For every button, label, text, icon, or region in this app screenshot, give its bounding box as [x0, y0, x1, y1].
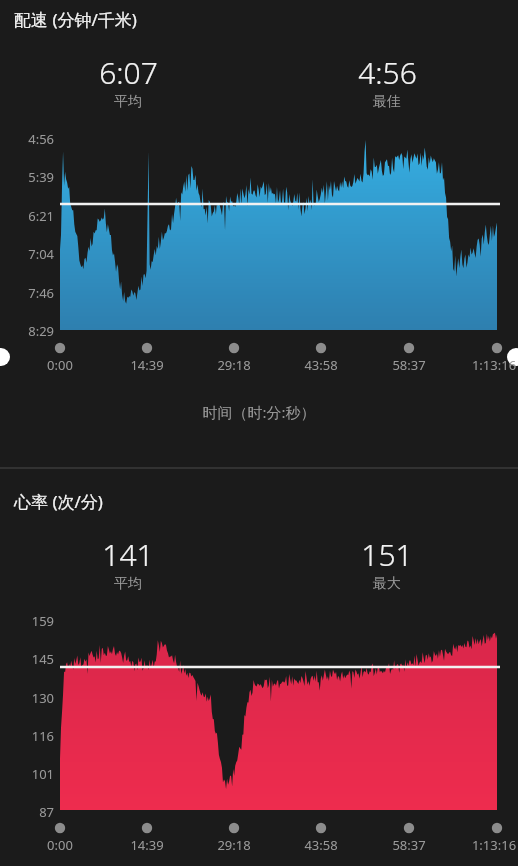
button[interactable]: 6:07 [58, 52, 198, 111]
staticText: 58:37 [359, 836, 459, 854]
staticText: 配速 (分钟/千米) [14, 8, 137, 31]
staticText: 时间（时:分:秒） [0, 402, 518, 422]
staticText: 145 [14, 650, 54, 668]
staticText: 4:56 [358, 52, 417, 93]
staticText: 14:39 [97, 836, 197, 854]
staticText: 7:46 [14, 284, 54, 302]
button[interactable]: 4:56 [317, 52, 457, 111]
staticText: 141 [102, 534, 154, 575]
staticText: 58:37 [359, 356, 459, 374]
staticText: 8:29 [14, 322, 54, 340]
staticText: 29:18 [184, 356, 284, 374]
button[interactable]: 141 [58, 534, 198, 593]
staticText: 43:58 [271, 356, 371, 374]
staticText: 6:21 [14, 207, 54, 225]
staticText: 5:39 [14, 168, 54, 186]
staticText: 7:04 [14, 245, 54, 263]
button[interactable]: 151 [317, 534, 457, 593]
staticText: 29:18 [184, 836, 284, 854]
staticText: 14:39 [97, 356, 197, 374]
button[interactable]: 配速 (分钟/千米) [14, 8, 137, 31]
staticText: 最佳 [373, 93, 401, 111]
staticText: 最大 [373, 575, 401, 593]
staticText: 0:00 [10, 356, 110, 374]
staticText: 0:00 [10, 836, 110, 854]
staticText: 心率 (次/分) [14, 490, 103, 513]
staticText: 43:58 [271, 836, 371, 854]
button[interactable]: Range start handle [0, 348, 18, 373]
staticText: 1:13:16 [444, 356, 518, 374]
staticText: 116 [14, 727, 54, 745]
staticText: 87 [14, 803, 54, 821]
staticText: 130 [14, 689, 54, 707]
staticText: 6:07 [99, 52, 158, 93]
staticText: 101 [14, 765, 54, 783]
staticText: 平均 [114, 575, 142, 593]
staticText: 159 [14, 612, 54, 630]
button[interactable]: Range end handle [502, 348, 518, 373]
staticText: 1:13:16 [444, 836, 518, 854]
staticText: 4:56 [14, 130, 54, 148]
staticText: 平均 [114, 93, 142, 111]
button[interactable]: 心率 (次/分) [14, 490, 103, 513]
staticText: 151 [361, 534, 413, 575]
